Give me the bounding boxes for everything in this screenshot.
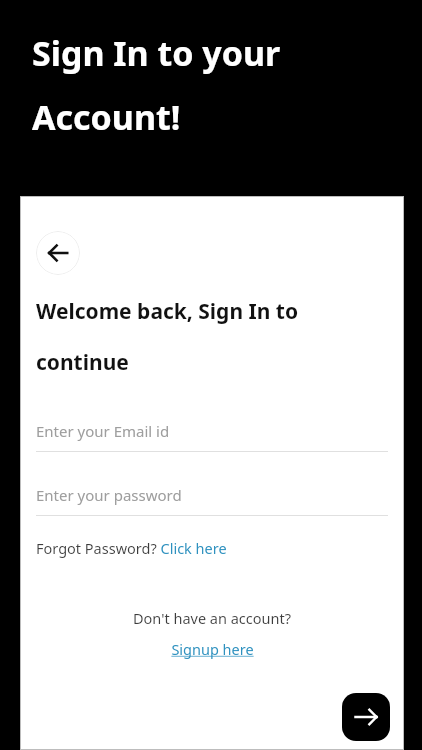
staticText: Signup here [171,639,254,659]
button[interactable]: Signup here [167,638,258,660]
button[interactable]: Back [36,231,80,275]
button[interactable]: Forgot Password? Click here [36,536,227,560]
staticText: Account! [32,94,181,140]
staticText: Enter your password [36,485,182,505]
staticText: Forgot Password? Click here [36,538,227,558]
staticText: Don't have an account? [133,608,291,628]
staticText: Welcome back, Sign In to [36,297,299,326]
staticText: continue [36,348,129,377]
button[interactable]: Enter your password [36,485,388,516]
staticText: Enter your Email id [36,421,170,441]
staticText: Sign In to your [32,30,281,76]
button[interactable]: Continue [342,693,390,741]
button[interactable]: Enter your Email id [36,421,388,452]
